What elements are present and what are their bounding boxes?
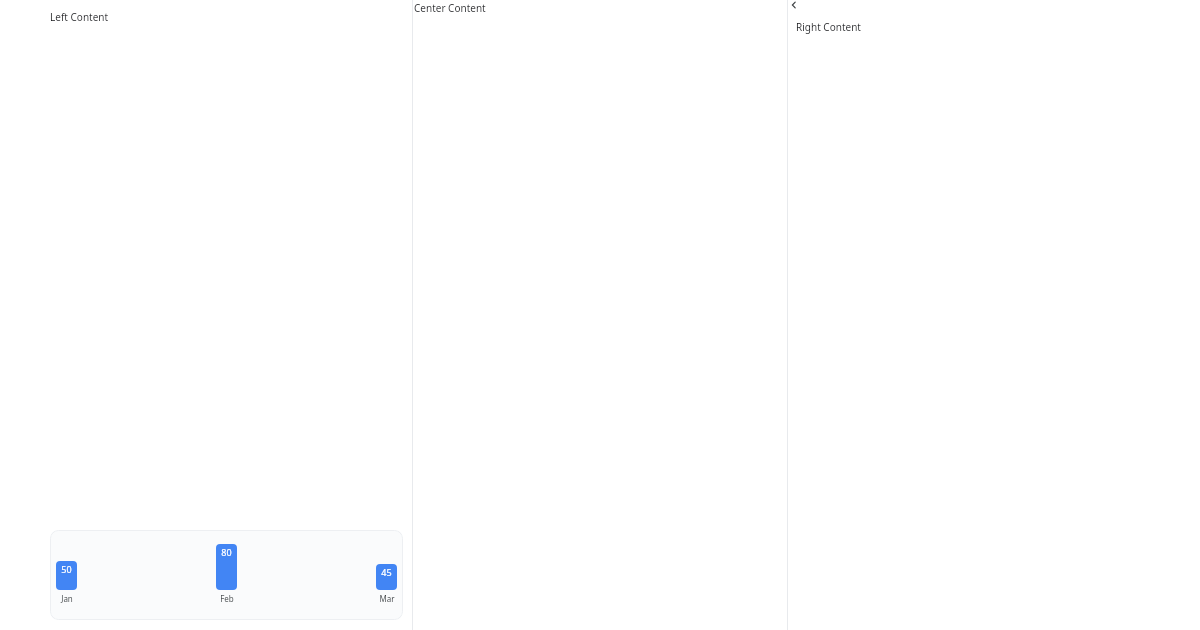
staticText: Center Content [414, 1, 486, 15]
staticText: Feb [220, 593, 234, 604]
staticText: 45 [381, 566, 392, 578]
staticText: Left Content [50, 10, 109, 24]
staticText: 80 [221, 546, 232, 558]
button[interactable]: 50 [50, 530, 403, 620]
staticText: Jan [61, 593, 73, 604]
staticText: Right Content [796, 20, 861, 34]
staticText: Mar [379, 593, 395, 604]
button[interactable]: Back [788, 0, 800, 11]
staticText: 50 [61, 563, 72, 575]
button[interactable]: 80 [216, 530, 237, 620]
button[interactable]: 50 [56, 530, 77, 620]
button[interactable]: 45 [376, 530, 397, 620]
